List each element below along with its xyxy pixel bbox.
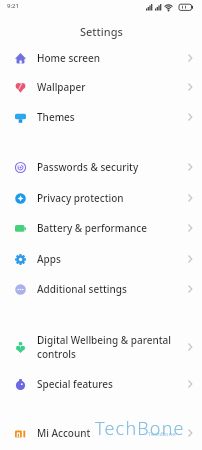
staticText: Digital Wellbeing & parental xyxy=(37,333,171,347)
button[interactable]: Home screen xyxy=(0,45,202,71)
staticText: Special features xyxy=(37,377,113,391)
staticText: 9:21 xyxy=(7,2,19,10)
button[interactable]: Wallpaper xyxy=(0,74,202,100)
staticText: Apps xyxy=(37,252,61,266)
staticText: Wallpaper xyxy=(37,80,86,94)
button[interactable]: Passwords & security xyxy=(0,154,202,180)
staticText: controls xyxy=(37,347,76,361)
staticText: Privacy protection xyxy=(37,191,124,205)
button[interactable]: Privacy protection xyxy=(0,185,202,211)
staticText: Home screen xyxy=(37,51,100,65)
button[interactable]: Themes xyxy=(0,104,202,130)
staticText: Additional settings xyxy=(37,282,127,296)
button[interactable]: Battery & performance xyxy=(0,215,202,241)
staticText: TechBone xyxy=(95,416,185,441)
button[interactable]: Apps xyxy=(0,246,202,272)
button[interactable]: Special features xyxy=(0,371,202,397)
staticText: TechBone xyxy=(148,430,176,438)
staticText: Settings xyxy=(80,24,123,39)
button[interactable]: Additional settings xyxy=(0,276,202,302)
staticText: Battery & performance xyxy=(37,221,147,235)
button[interactable]: Mi Account xyxy=(0,420,202,446)
staticText: Themes xyxy=(37,110,75,124)
staticText: Passwords & security xyxy=(37,160,139,174)
button[interactable]: Digital Wellbeing & parental xyxy=(0,330,202,364)
staticText: Mi Account xyxy=(37,426,91,440)
